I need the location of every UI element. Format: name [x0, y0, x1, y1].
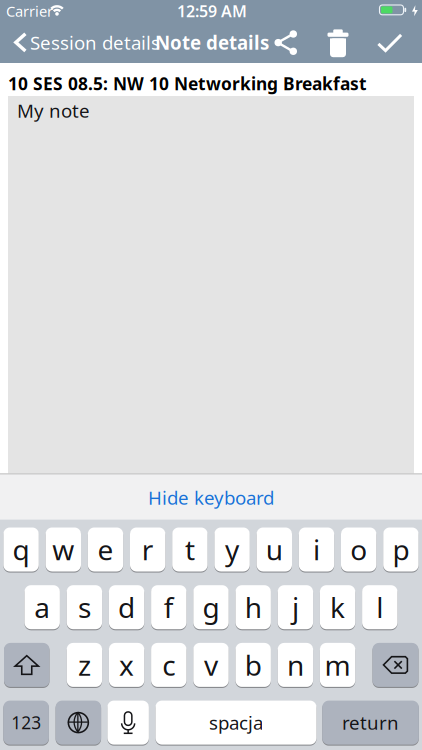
staticText: Session details: [30, 30, 160, 55]
staticText: e: [97, 531, 113, 568]
staticText: c: [162, 646, 175, 683]
staticText: b: [245, 646, 262, 683]
staticText: r: [142, 531, 154, 568]
staticText: Carrier: [6, 1, 53, 21]
staticText: spacja: [209, 710, 263, 735]
staticText: 12:59 AM: [177, 0, 247, 22]
staticText: s: [78, 589, 91, 626]
staticText: a: [34, 589, 50, 626]
staticText: 10 SES 08.5: NW 10 Networking Breakfast: [8, 72, 367, 95]
staticText: i: [313, 531, 320, 568]
staticText: Hide keyboard: [148, 485, 274, 510]
staticText: m: [325, 646, 351, 683]
staticText: v: [204, 646, 218, 683]
staticText: j: [292, 589, 299, 626]
staticText: x: [119, 646, 134, 683]
staticText: Note details: [155, 30, 269, 55]
staticText: t: [185, 531, 195, 568]
staticText: 123: [11, 711, 41, 734]
staticText: n: [287, 646, 304, 683]
staticText: k: [330, 589, 345, 626]
staticText: p: [392, 531, 409, 568]
staticText: My note: [17, 98, 90, 123]
staticText: w: [52, 531, 74, 568]
staticText: y: [225, 531, 239, 568]
staticText: z: [78, 646, 91, 683]
staticText: q: [13, 531, 30, 568]
staticText: l: [376, 589, 383, 626]
staticText: u: [266, 531, 283, 568]
staticText: g: [202, 589, 219, 626]
staticText: f: [164, 589, 174, 626]
staticText: h: [245, 589, 262, 626]
staticText: d: [118, 589, 135, 626]
staticText: return: [342, 710, 399, 735]
staticText: o: [350, 531, 367, 568]
